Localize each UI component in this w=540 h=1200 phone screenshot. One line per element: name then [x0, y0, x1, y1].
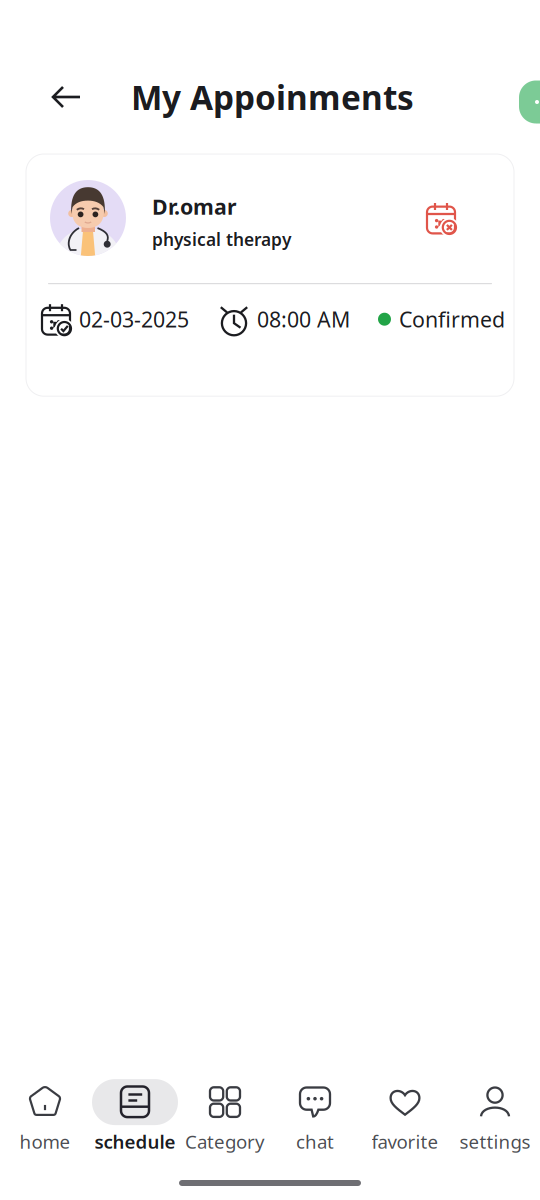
- staticText: chat: [296, 1129, 334, 1154]
- button[interactable]: Back: [40, 74, 92, 120]
- button[interactable]: chat: [270, 1078, 360, 1154]
- button[interactable]: home: [0, 1078, 90, 1154]
- staticText: 02-03-2025: [79, 305, 189, 333]
- button[interactable]: settings: [450, 1078, 540, 1154]
- staticText: Dr.omar: [152, 192, 237, 221]
- staticText: 08:00 AM: [257, 305, 350, 333]
- staticText: My Appoinments: [131, 75, 414, 119]
- button[interactable]: More options: [496, 75, 540, 118]
- staticText: Category: [185, 1129, 265, 1154]
- button[interactable]: Category: [180, 1078, 270, 1154]
- staticText: physical therapy: [152, 228, 291, 251]
- button[interactable]: favorite: [360, 1078, 450, 1154]
- staticText: Confirmed: [399, 305, 505, 333]
- staticText: settings: [459, 1129, 530, 1154]
- staticText: favorite: [371, 1129, 438, 1154]
- button[interactable]: schedule: [90, 1078, 180, 1154]
- staticText: home: [19, 1129, 70, 1154]
- staticText: schedule: [94, 1129, 175, 1154]
- button[interactable]: Cancel appointment: [419, 196, 463, 240]
